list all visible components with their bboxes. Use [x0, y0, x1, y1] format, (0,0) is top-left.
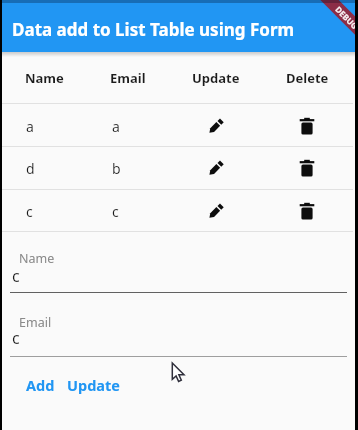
staticText: c — [12, 327, 20, 349]
staticText: a — [112, 117, 120, 136]
staticText: Email — [110, 69, 146, 87]
staticText: Delete — [286, 69, 329, 87]
staticText: Name — [19, 250, 55, 267]
staticText: DEBUG — [333, 4, 358, 31]
button[interactable] — [196, 106, 236, 146]
button[interactable]: Email — [10, 308, 347, 358]
button[interactable] — [196, 148, 236, 188]
staticText: d — [26, 159, 35, 178]
staticText: Email — [19, 314, 52, 331]
button[interactable] — [287, 191, 327, 231]
staticText: c — [112, 202, 119, 221]
staticText: Update — [67, 375, 120, 395]
button[interactable]: Update — [55, 371, 131, 399]
button[interactable] — [287, 148, 327, 188]
staticText: Update — [192, 69, 240, 87]
button[interactable]: Name — [10, 244, 347, 294]
staticText: b — [112, 159, 121, 178]
button[interactable] — [196, 191, 236, 231]
button[interactable]: Add — [10, 371, 70, 399]
staticText: c — [26, 202, 33, 221]
staticText: c — [12, 265, 20, 287]
staticText: Name — [25, 69, 64, 87]
staticText: a — [26, 117, 34, 136]
staticText: Add — [26, 375, 55, 395]
button[interactable] — [287, 106, 327, 146]
staticText: Data add to List Table using Form — [12, 18, 295, 40]
